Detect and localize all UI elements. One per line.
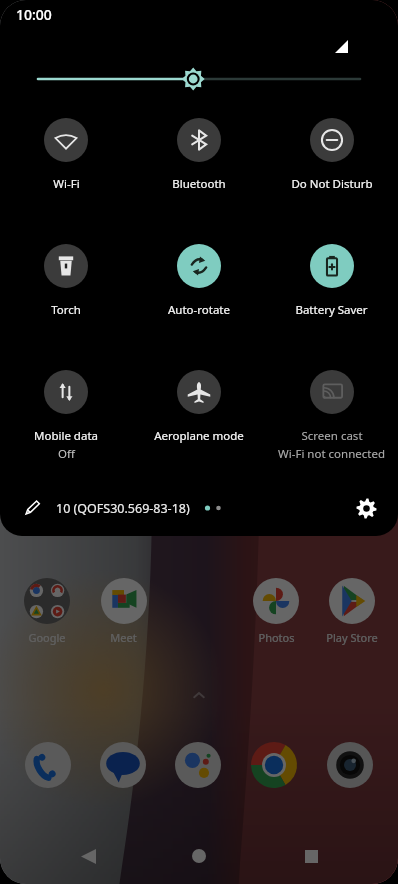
button[interactable]: Screen cast	[265, 370, 398, 462]
staticText: 10:00	[16, 5, 52, 24]
button[interactable]: Back	[64, 832, 112, 880]
button[interactable]: Google	[8, 578, 85, 645]
staticText: 10 (QOFS30.569-83-18)	[56, 500, 190, 517]
button[interactable]: Aeroplane mode	[132, 370, 265, 444]
button[interactable]: Chrome	[236, 742, 312, 788]
button[interactable]: Auto-rotate	[132, 244, 265, 318]
staticText: Wi-Fi not connected	[278, 446, 385, 462]
staticText: Aeroplane mode	[154, 428, 244, 444]
button[interactable]: Brightness	[38, 64, 360, 94]
staticText: Screen cast	[301, 428, 363, 444]
button[interactable]: Camera	[312, 742, 388, 788]
staticText: Google	[28, 630, 66, 645]
button[interactable]: Edit tiles	[14, 491, 48, 525]
button[interactable]: Wi-Fi	[0, 118, 132, 192]
button[interactable]: Home	[175, 832, 223, 880]
staticText: Do Not Disturb	[291, 176, 373, 192]
staticText: Torch	[51, 302, 81, 318]
button[interactable]: Battery Saver	[265, 244, 398, 318]
button[interactable]: Recent apps	[287, 832, 335, 880]
button[interactable]: Messages	[85, 742, 160, 788]
staticText: Mobile data	[34, 428, 98, 444]
button[interactable]: Meet	[85, 578, 162, 645]
button[interactable]: Settings	[348, 490, 384, 526]
staticText: Off	[58, 446, 75, 462]
button[interactable]: Bluetooth	[132, 118, 265, 192]
button[interactable]: Phone	[10, 742, 85, 788]
button[interactable]: Torch	[0, 244, 132, 318]
button[interactable]: Photos	[238, 578, 314, 645]
staticText: Auto-rotate	[168, 302, 230, 318]
button[interactable]: Play Store	[314, 578, 390, 645]
staticText: Bluetooth	[172, 176, 226, 192]
button[interactable]: Do Not Disturb	[265, 118, 398, 192]
staticText: Play Store	[326, 630, 378, 645]
button[interactable]: Assistant	[160, 742, 236, 788]
staticText: Meet	[110, 630, 137, 645]
button[interactable]: Mobile data	[0, 370, 132, 462]
staticText: Battery Saver	[295, 302, 368, 318]
staticText: Photos	[258, 630, 295, 645]
staticText: Wi-Fi	[53, 176, 80, 192]
